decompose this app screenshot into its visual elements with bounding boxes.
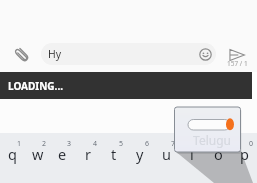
- button[interactable]: Telugu keyboard toggle: [174, 107, 241, 153]
- staticText: 4: [93, 139, 98, 149]
- button[interactable]: 7: [153, 133, 179, 183]
- staticText: 5: [119, 139, 124, 149]
- staticText: y: [136, 144, 144, 164]
- button[interactable]: 4: [75, 133, 101, 183]
- staticText: LOADING...: [8, 79, 64, 93]
- staticText: t: [111, 144, 117, 164]
- staticText: 8: [197, 139, 202, 149]
- staticText: u: [162, 144, 171, 164]
- staticText: e: [58, 144, 67, 164]
- button[interactable]: 0: [231, 133, 257, 183]
- button[interactable]: 1: [0, 133, 25, 183]
- button[interactable]: 6: [127, 133, 153, 183]
- staticText: i: [190, 144, 194, 164]
- button[interactable]: Attach file: [9, 42, 33, 66]
- staticText: r: [85, 144, 91, 164]
- button[interactable]: 5: [101, 133, 127, 183]
- staticText: 9: [223, 139, 228, 149]
- staticText: 6: [145, 139, 150, 149]
- staticText: Hy: [48, 47, 62, 61]
- button[interactable]: Hy: [41, 43, 216, 65]
- button[interactable]: Send: [223, 36, 251, 72]
- button[interactable]: 8: [179, 133, 205, 183]
- staticText: Telugu: [193, 132, 231, 148]
- button[interactable]: 3: [50, 133, 75, 183]
- staticText: 0: [249, 139, 254, 149]
- staticText: o: [214, 144, 223, 164]
- button[interactable]: 2: [25, 133, 50, 183]
- staticText: 2: [42, 139, 47, 149]
- staticText: 1: [17, 139, 22, 149]
- button[interactable]: LOADING...: [0, 72, 252, 99]
- staticText: 157 / 1: [227, 59, 248, 68]
- staticText: p: [240, 144, 249, 164]
- staticText: 7: [171, 139, 176, 149]
- button[interactable]: 9: [205, 133, 231, 183]
- staticText: 3: [67, 139, 72, 149]
- button[interactable]: Emoji: [198, 47, 212, 61]
- staticText: q: [8, 144, 17, 164]
- staticText: w: [32, 144, 44, 164]
